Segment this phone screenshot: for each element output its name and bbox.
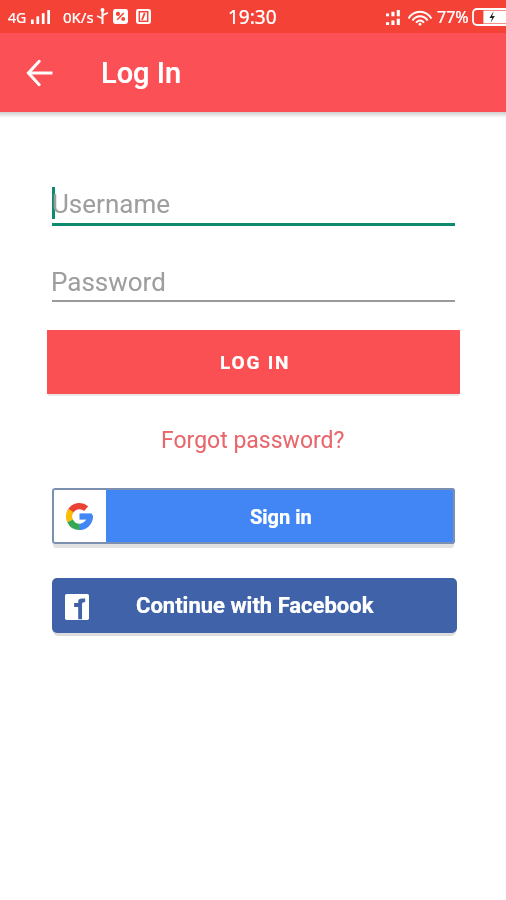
staticText: 77% [437, 6, 469, 28]
staticText: Sign in [250, 505, 312, 528]
staticText: 4G [8, 8, 27, 27]
button[interactable]: Forgot password? [150, 424, 356, 456]
staticText: 19:30 [228, 4, 277, 30]
button[interactable]: Password [52, 260, 455, 302]
staticText: Log In [101, 56, 182, 90]
button[interactable]: LOG IN [47, 330, 460, 394]
button[interactable]: Sign in [52, 488, 455, 544]
staticText: Continue with Facebook [136, 593, 374, 619]
staticText: Username [52, 189, 170, 219]
button[interactable]: Back [16, 49, 64, 97]
staticText: LOG IN [220, 351, 291, 373]
button[interactable]: Continue with Facebook [52, 578, 457, 633]
button[interactable]: Username [52, 180, 455, 226]
staticText: Forgot password? [161, 427, 345, 454]
staticText: Password [51, 267, 166, 297]
staticText: 0K/s [63, 7, 94, 27]
